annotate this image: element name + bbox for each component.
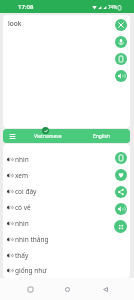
button[interactable]: Share (115, 186, 127, 198)
button[interactable]: thấy (3, 247, 130, 263)
button[interactable]: Speak all (115, 203, 127, 215)
staticText: nhìn (15, 219, 29, 228)
button[interactable]: nhìn (3, 215, 130, 231)
button[interactable]: English (75, 129, 129, 143)
button[interactable]: Recent apps (22, 281, 38, 297)
button[interactable]: Favourite (115, 169, 127, 181)
button[interactable]: Close (115, 19, 127, 31)
staticText: look (8, 19, 22, 28)
staticText: 74% (108, 4, 117, 10)
button[interactable]: Menu (3, 129, 21, 143)
button[interactable]: coi đây (3, 183, 130, 199)
staticText: coi đây (15, 187, 37, 196)
staticText: có vẻ (15, 203, 31, 212)
button[interactable]: nhìn (3, 151, 130, 167)
staticText: English (93, 133, 111, 140)
staticText: 17:08 (18, 3, 34, 11)
button[interactable]: Copy all (115, 152, 127, 164)
button[interactable]: Home (59, 281, 75, 297)
button[interactable]: Voice input (115, 36, 127, 48)
button[interactable]: có vẻ (3, 199, 130, 215)
button[interactable]: nhìn thẳng (3, 231, 130, 247)
staticText: nhìn thẳng (15, 235, 49, 244)
button[interactable]: Confirm (42, 127, 49, 134)
button[interactable]: Copy (115, 53, 127, 65)
staticText: giống như (15, 266, 47, 275)
button[interactable]: xem (3, 167, 130, 183)
staticText: thấy (15, 251, 29, 260)
staticText: Vietnamese (34, 133, 62, 140)
button[interactable]: Full screen (114, 220, 127, 233)
button[interactable]: giống như (3, 263, 130, 278)
staticText: nhìn (15, 155, 29, 164)
button[interactable]: Speak (115, 70, 127, 82)
button[interactable]: Back (97, 281, 113, 297)
button[interactable]: Vietnamese (21, 129, 75, 143)
staticText: xem (15, 171, 29, 180)
